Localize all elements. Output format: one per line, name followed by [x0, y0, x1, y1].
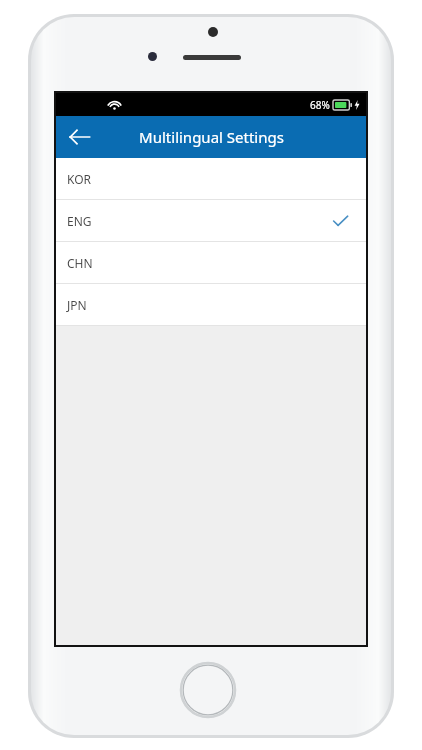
staticText: KOR: [67, 171, 92, 187]
staticText: JPN: [67, 297, 87, 313]
button[interactable]: ENG: [56, 200, 366, 241]
button[interactable]: JPN: [56, 284, 366, 325]
button[interactable]: Back: [56, 116, 102, 158]
button[interactable]: CHN: [56, 242, 366, 283]
button[interactable]: KOR: [56, 158, 366, 199]
staticText: CHN: [67, 255, 93, 271]
staticText: ENG: [67, 213, 92, 229]
staticText: Multilingual Settings: [139, 127, 284, 147]
staticText: 68%: [310, 98, 330, 112]
